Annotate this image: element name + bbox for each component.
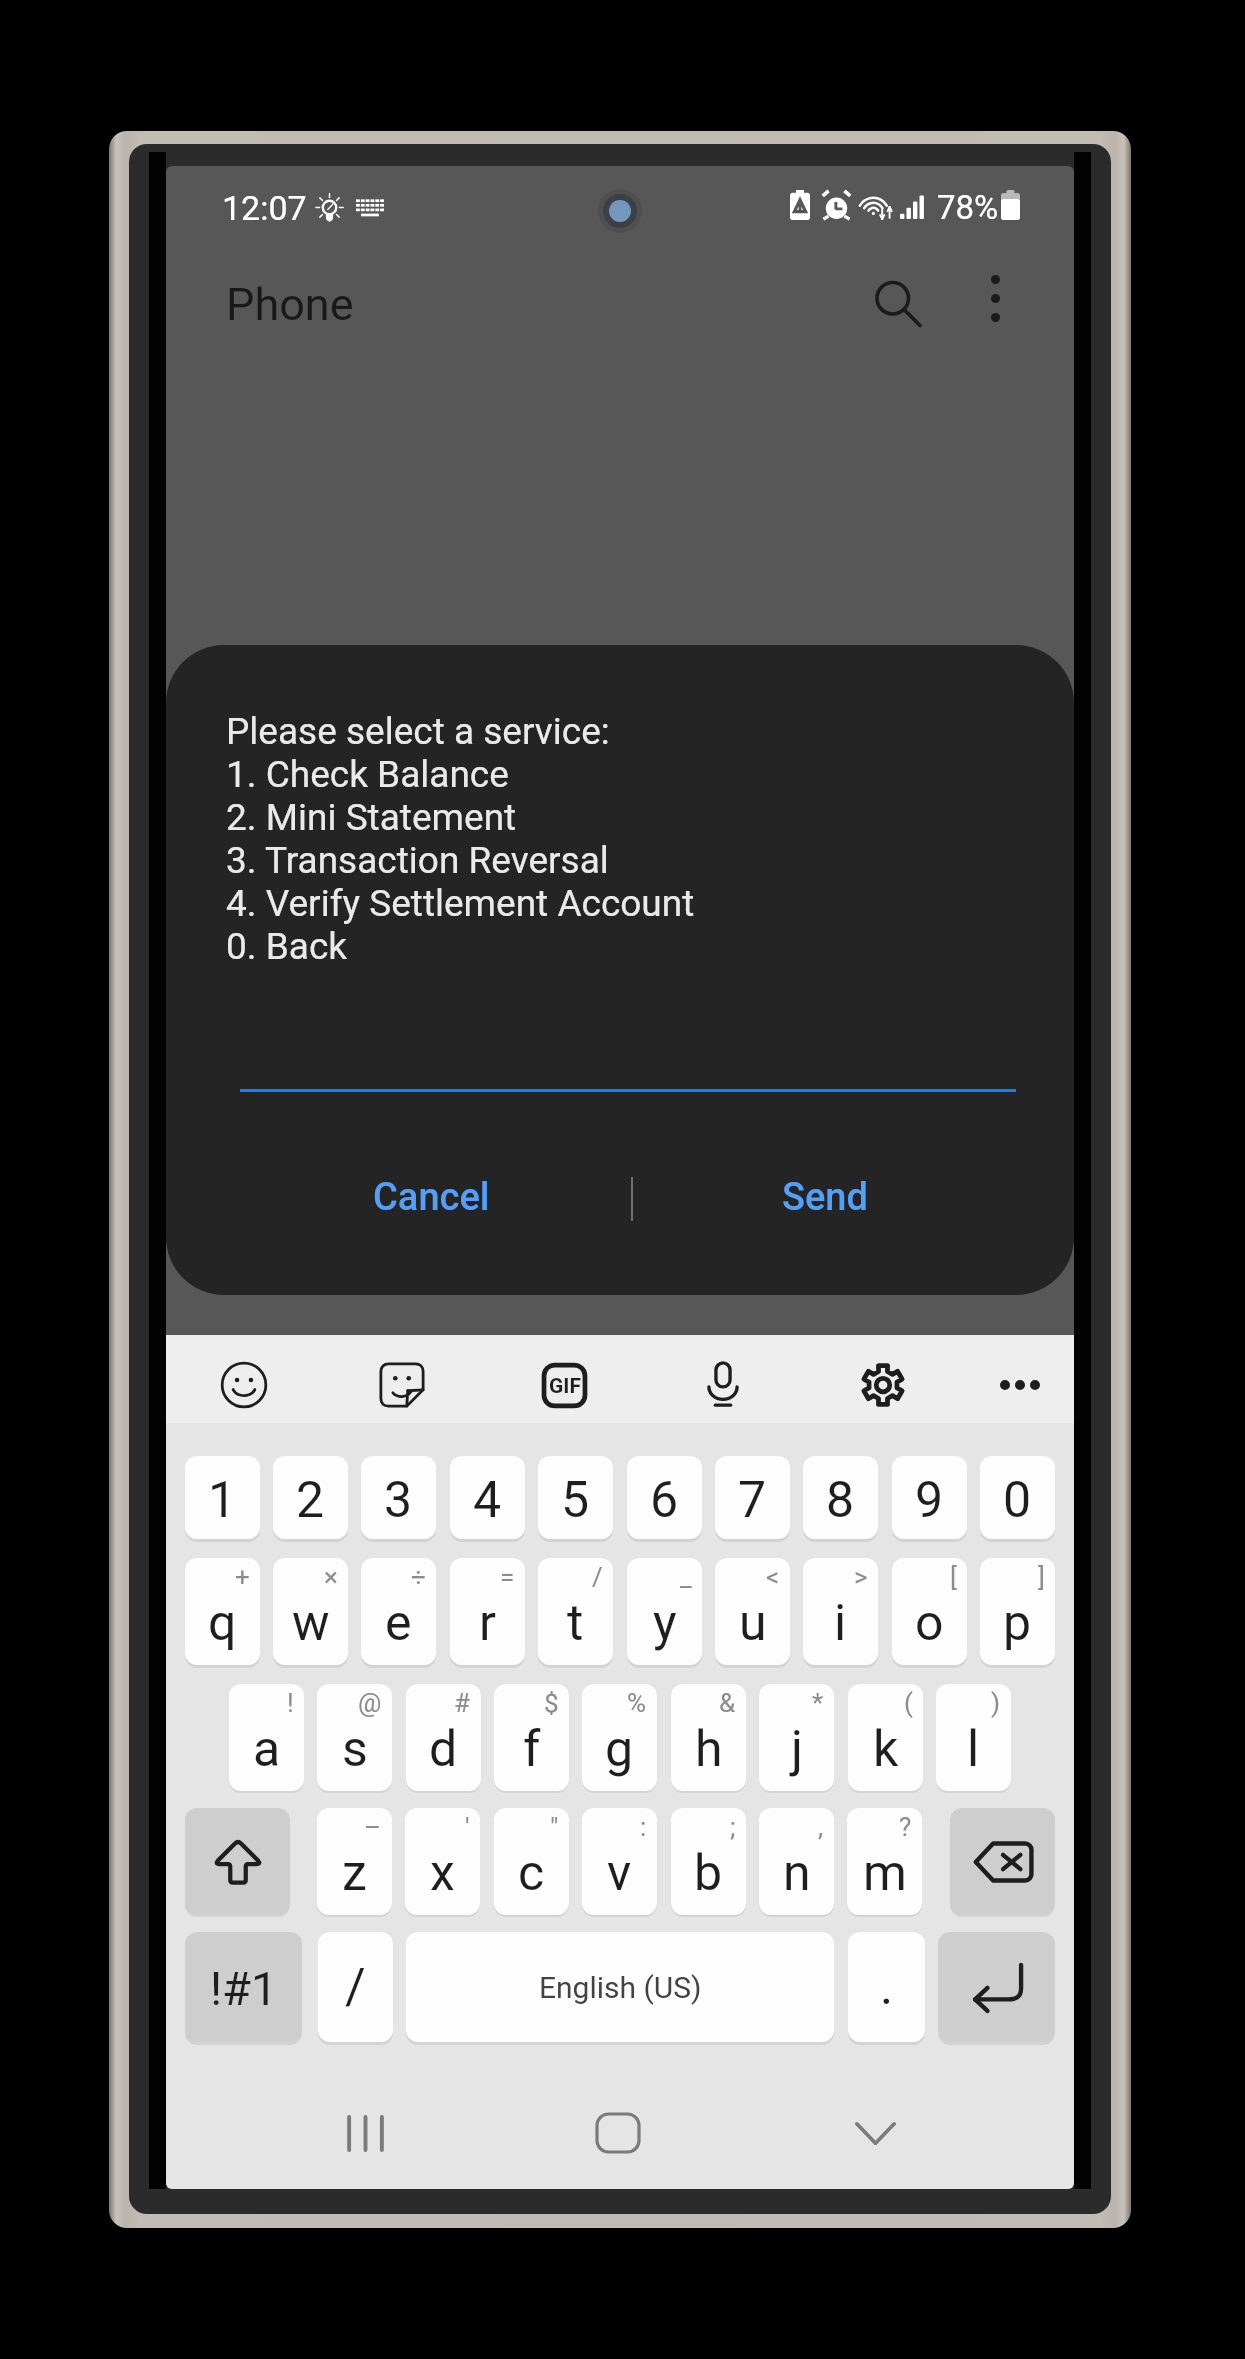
button[interactable]: More options bbox=[955, 258, 1035, 338]
staticText: = bbox=[500, 1562, 515, 1592]
button[interactable]: $ bbox=[494, 1684, 569, 1791]
button[interactable]: Symbols bbox=[185, 1932, 302, 2042]
button[interactable]: Hide keyboard bbox=[785, 2092, 965, 2174]
button[interactable]: 2 bbox=[273, 1456, 348, 1539]
staticText: < bbox=[766, 1562, 780, 1592]
button[interactable]: 6 bbox=[627, 1456, 702, 1539]
staticText: x bbox=[430, 1844, 455, 1903]
staticText: 2 bbox=[296, 1471, 325, 1530]
button[interactable]: ; bbox=[671, 1808, 746, 1915]
button[interactable]: ] bbox=[980, 1558, 1055, 1665]
button[interactable]: 4 bbox=[450, 1456, 525, 1539]
staticText: d bbox=[429, 1720, 458, 1779]
staticText: Please select a service: bbox=[226, 710, 610, 753]
staticText: # bbox=[454, 1688, 471, 1718]
button[interactable]: : bbox=[582, 1808, 657, 1915]
staticText: , bbox=[818, 1812, 824, 1842]
button[interactable]: / bbox=[538, 1558, 613, 1665]
button[interactable]: 7 bbox=[715, 1456, 790, 1539]
button[interactable]: GIF bbox=[520, 1341, 608, 1429]
button[interactable]: 9 bbox=[892, 1456, 967, 1539]
staticText: 12:07 bbox=[222, 188, 307, 228]
button[interactable]: Stickers bbox=[358, 1341, 446, 1429]
button[interactable]: 8 bbox=[803, 1456, 878, 1539]
button[interactable]: – bbox=[317, 1808, 392, 1915]
staticText: Send bbox=[782, 1175, 868, 1220]
button[interactable]: Enter bbox=[938, 1932, 1055, 2042]
button[interactable]: Voice input bbox=[679, 1341, 767, 1429]
button[interactable]: ) bbox=[936, 1684, 1011, 1791]
staticText: ] bbox=[1038, 1562, 1045, 1592]
staticText: m bbox=[863, 1844, 907, 1903]
staticText: q bbox=[208, 1594, 237, 1653]
staticText: z bbox=[342, 1844, 367, 1903]
staticText: 1. Check Balance bbox=[226, 753, 509, 796]
button[interactable]: Home bbox=[528, 2092, 708, 2174]
staticText: ! bbox=[287, 1688, 294, 1718]
staticText: a bbox=[253, 1720, 281, 1779]
button[interactable]: * bbox=[759, 1684, 834, 1791]
button[interactable]: Emoji bbox=[200, 1341, 288, 1429]
staticText: ' bbox=[465, 1812, 470, 1842]
staticText: 7 bbox=[738, 1471, 767, 1530]
staticText: v bbox=[607, 1844, 632, 1903]
staticText: w bbox=[292, 1594, 330, 1653]
staticText: × bbox=[324, 1562, 338, 1592]
button[interactable]: Search bbox=[852, 258, 944, 350]
staticText: p bbox=[1003, 1594, 1032, 1653]
button[interactable]: ' bbox=[405, 1808, 480, 1915]
staticText: " bbox=[550, 1812, 559, 1842]
staticText: $ bbox=[544, 1688, 559, 1718]
button[interactable]: % bbox=[582, 1684, 657, 1791]
staticText: h bbox=[695, 1720, 723, 1779]
button[interactable]: = bbox=[450, 1558, 525, 1665]
button[interactable]: > bbox=[803, 1558, 878, 1665]
button[interactable]: 3 bbox=[361, 1456, 436, 1539]
button[interactable]: _ bbox=[627, 1558, 702, 1665]
staticText: . bbox=[880, 1958, 894, 2017]
button[interactable]: Send bbox=[639, 1141, 1011, 1253]
staticText: f bbox=[523, 1720, 541, 1779]
staticText: & bbox=[719, 1688, 736, 1718]
button[interactable]: ÷ bbox=[361, 1558, 436, 1665]
button[interactable]: 5 bbox=[538, 1456, 613, 1539]
staticText: 78% bbox=[937, 188, 999, 227]
button[interactable]: 0 bbox=[980, 1456, 1055, 1539]
staticText: c bbox=[518, 1844, 545, 1903]
staticText: 0. Back bbox=[226, 925, 348, 968]
staticText: / bbox=[345, 1958, 366, 2017]
button[interactable]: < bbox=[715, 1558, 790, 1665]
button[interactable]: / bbox=[318, 1932, 393, 2042]
button[interactable]: ( bbox=[848, 1684, 923, 1791]
staticText: 3 bbox=[384, 1471, 413, 1530]
button[interactable]: & bbox=[671, 1684, 746, 1791]
staticText: n bbox=[783, 1844, 811, 1903]
staticText: 8 bbox=[826, 1471, 855, 1530]
button[interactable]: More options bbox=[976, 1341, 1064, 1429]
button[interactable]: Space bbox=[406, 1932, 834, 2042]
button[interactable]: Cancel bbox=[245, 1141, 617, 1253]
button[interactable]: . bbox=[848, 1932, 925, 2042]
staticText: 6 bbox=[650, 1471, 679, 1530]
button[interactable]: × bbox=[273, 1558, 348, 1665]
button[interactable]: Backspace bbox=[950, 1808, 1055, 1915]
staticText: 0 bbox=[1003, 1471, 1032, 1530]
button[interactable]: @ bbox=[317, 1684, 392, 1791]
button[interactable]: # bbox=[406, 1684, 481, 1791]
staticText: 3. Transaction Reversal bbox=[226, 839, 609, 882]
button[interactable]: [ bbox=[892, 1558, 967, 1665]
staticText: ? bbox=[899, 1812, 912, 1842]
staticText: 4. Verify Settlement Account bbox=[226, 882, 695, 925]
staticText: GIF bbox=[549, 1374, 581, 1399]
button[interactable]: " bbox=[494, 1808, 569, 1915]
button[interactable]: 1 bbox=[185, 1456, 260, 1539]
staticText: Phone bbox=[226, 278, 354, 331]
button[interactable]: Recents bbox=[275, 2092, 455, 2174]
button[interactable]: ? bbox=[847, 1808, 922, 1915]
button[interactable]: + bbox=[185, 1558, 260, 1665]
button[interactable]: Keyboard settings bbox=[839, 1341, 927, 1429]
button[interactable]: , bbox=[759, 1808, 834, 1915]
button[interactable]: Shift bbox=[185, 1808, 290, 1915]
button[interactable]: ! bbox=[229, 1684, 304, 1791]
staticText: j bbox=[791, 1720, 803, 1779]
